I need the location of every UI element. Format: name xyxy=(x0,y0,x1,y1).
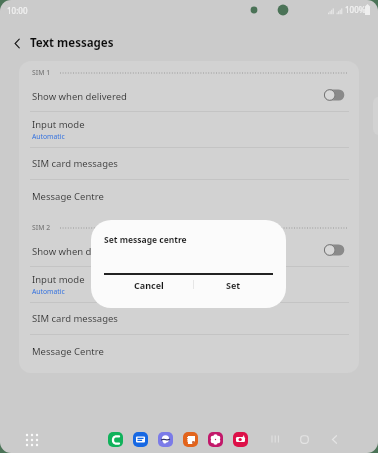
staticText: 100% xyxy=(345,4,366,15)
button[interactable]: Internet xyxy=(158,432,173,447)
staticText: Set message centre xyxy=(104,234,187,246)
staticText: Set xyxy=(226,279,241,291)
button[interactable]: Phone xyxy=(108,432,123,447)
button[interactable]: Show when delivered toggle xyxy=(324,88,345,102)
staticText: Message Centre xyxy=(32,345,104,358)
button[interactable]: Message Centre xyxy=(19,180,359,213)
staticText: SIM 2 xyxy=(32,223,51,232)
staticText: SIM 1 xyxy=(32,68,51,77)
button[interactable]: Messages xyxy=(133,432,148,447)
staticText: SIM card messages xyxy=(32,312,118,325)
button[interactable]: Show when delivered toggle xyxy=(324,243,345,257)
staticText: Automatic xyxy=(32,287,65,296)
staticText: Show when delivered xyxy=(32,245,127,258)
staticText: Automatic xyxy=(32,132,65,141)
button[interactable]: Message Centre xyxy=(19,335,359,368)
button[interactable]: Recents xyxy=(267,431,283,447)
button[interactable]: Camera xyxy=(233,432,248,447)
button[interactable]: Back xyxy=(0,28,30,58)
staticText: SIM card messages xyxy=(32,157,118,170)
button[interactable]: SIM card messages xyxy=(19,148,359,179)
staticText: Input mode xyxy=(32,273,85,286)
staticText: 10:00 xyxy=(7,5,28,16)
button[interactable]: Notes xyxy=(183,432,198,447)
button[interactable]: Cancel xyxy=(104,276,193,294)
button[interactable]: Galaxy Store xyxy=(208,432,223,447)
button[interactable]: SIM card messages xyxy=(19,303,359,334)
staticText: Show when delivered xyxy=(32,90,127,103)
button[interactable]: Apps xyxy=(22,430,42,450)
button[interactable]: Home xyxy=(296,431,312,447)
button[interactable]: Input mode xyxy=(19,267,359,302)
button[interactable]: Show when delivered xyxy=(19,81,359,111)
staticText: Cancel xyxy=(134,279,164,291)
button[interactable]: Set xyxy=(194,276,273,294)
staticText: Text messages xyxy=(30,35,114,51)
button[interactable]: Back xyxy=(326,431,342,447)
staticText: Input mode xyxy=(32,118,85,131)
button[interactable]: Show when delivered xyxy=(19,236,359,266)
button[interactable]: Input mode xyxy=(19,112,359,147)
staticText: Message Centre xyxy=(32,190,104,203)
